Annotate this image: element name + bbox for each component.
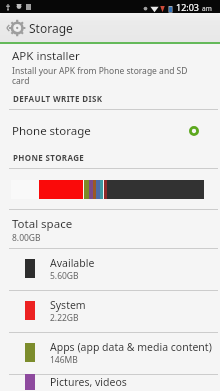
button[interactable]: APK installer — [0, 48, 220, 87]
button[interactable]: System — [0, 291, 220, 332]
staticText: 2.22GB — [50, 312, 79, 324]
staticText: Install your APK from Phone storage and … — [12, 65, 198, 87]
button[interactable]: Total space — [0, 210, 220, 248]
staticText: Phone storage — [12, 123, 91, 139]
staticText: 12:03 — [176, 1, 200, 13]
button[interactable]: Up — [0, 13, 220, 42]
staticText: DEFAULT WRITE DISK — [13, 93, 103, 104]
staticText: System — [50, 298, 86, 312]
button[interactable]: Available — [0, 249, 220, 290]
button[interactable]: Apps (app data & media content) — [0, 333, 220, 374]
staticText: Apps (app data & media content) — [50, 340, 212, 354]
staticText: APK installer — [12, 48, 80, 64]
staticText: Available — [50, 256, 95, 270]
staticText: PHONE STORAGE — [13, 152, 85, 163]
staticText: Pictures, videos — [50, 375, 127, 389]
staticText: 146MB — [50, 354, 78, 366]
staticText: am — [202, 4, 212, 13]
staticText: 5.60GB — [50, 270, 79, 282]
staticText: Total space — [12, 216, 73, 232]
button[interactable]: Pictures, videos — [0, 375, 220, 391]
button[interactable]: Phone storage — [0, 110, 220, 152]
staticText: Storage — [29, 20, 73, 36]
staticText: 8.00GB — [12, 232, 41, 244]
